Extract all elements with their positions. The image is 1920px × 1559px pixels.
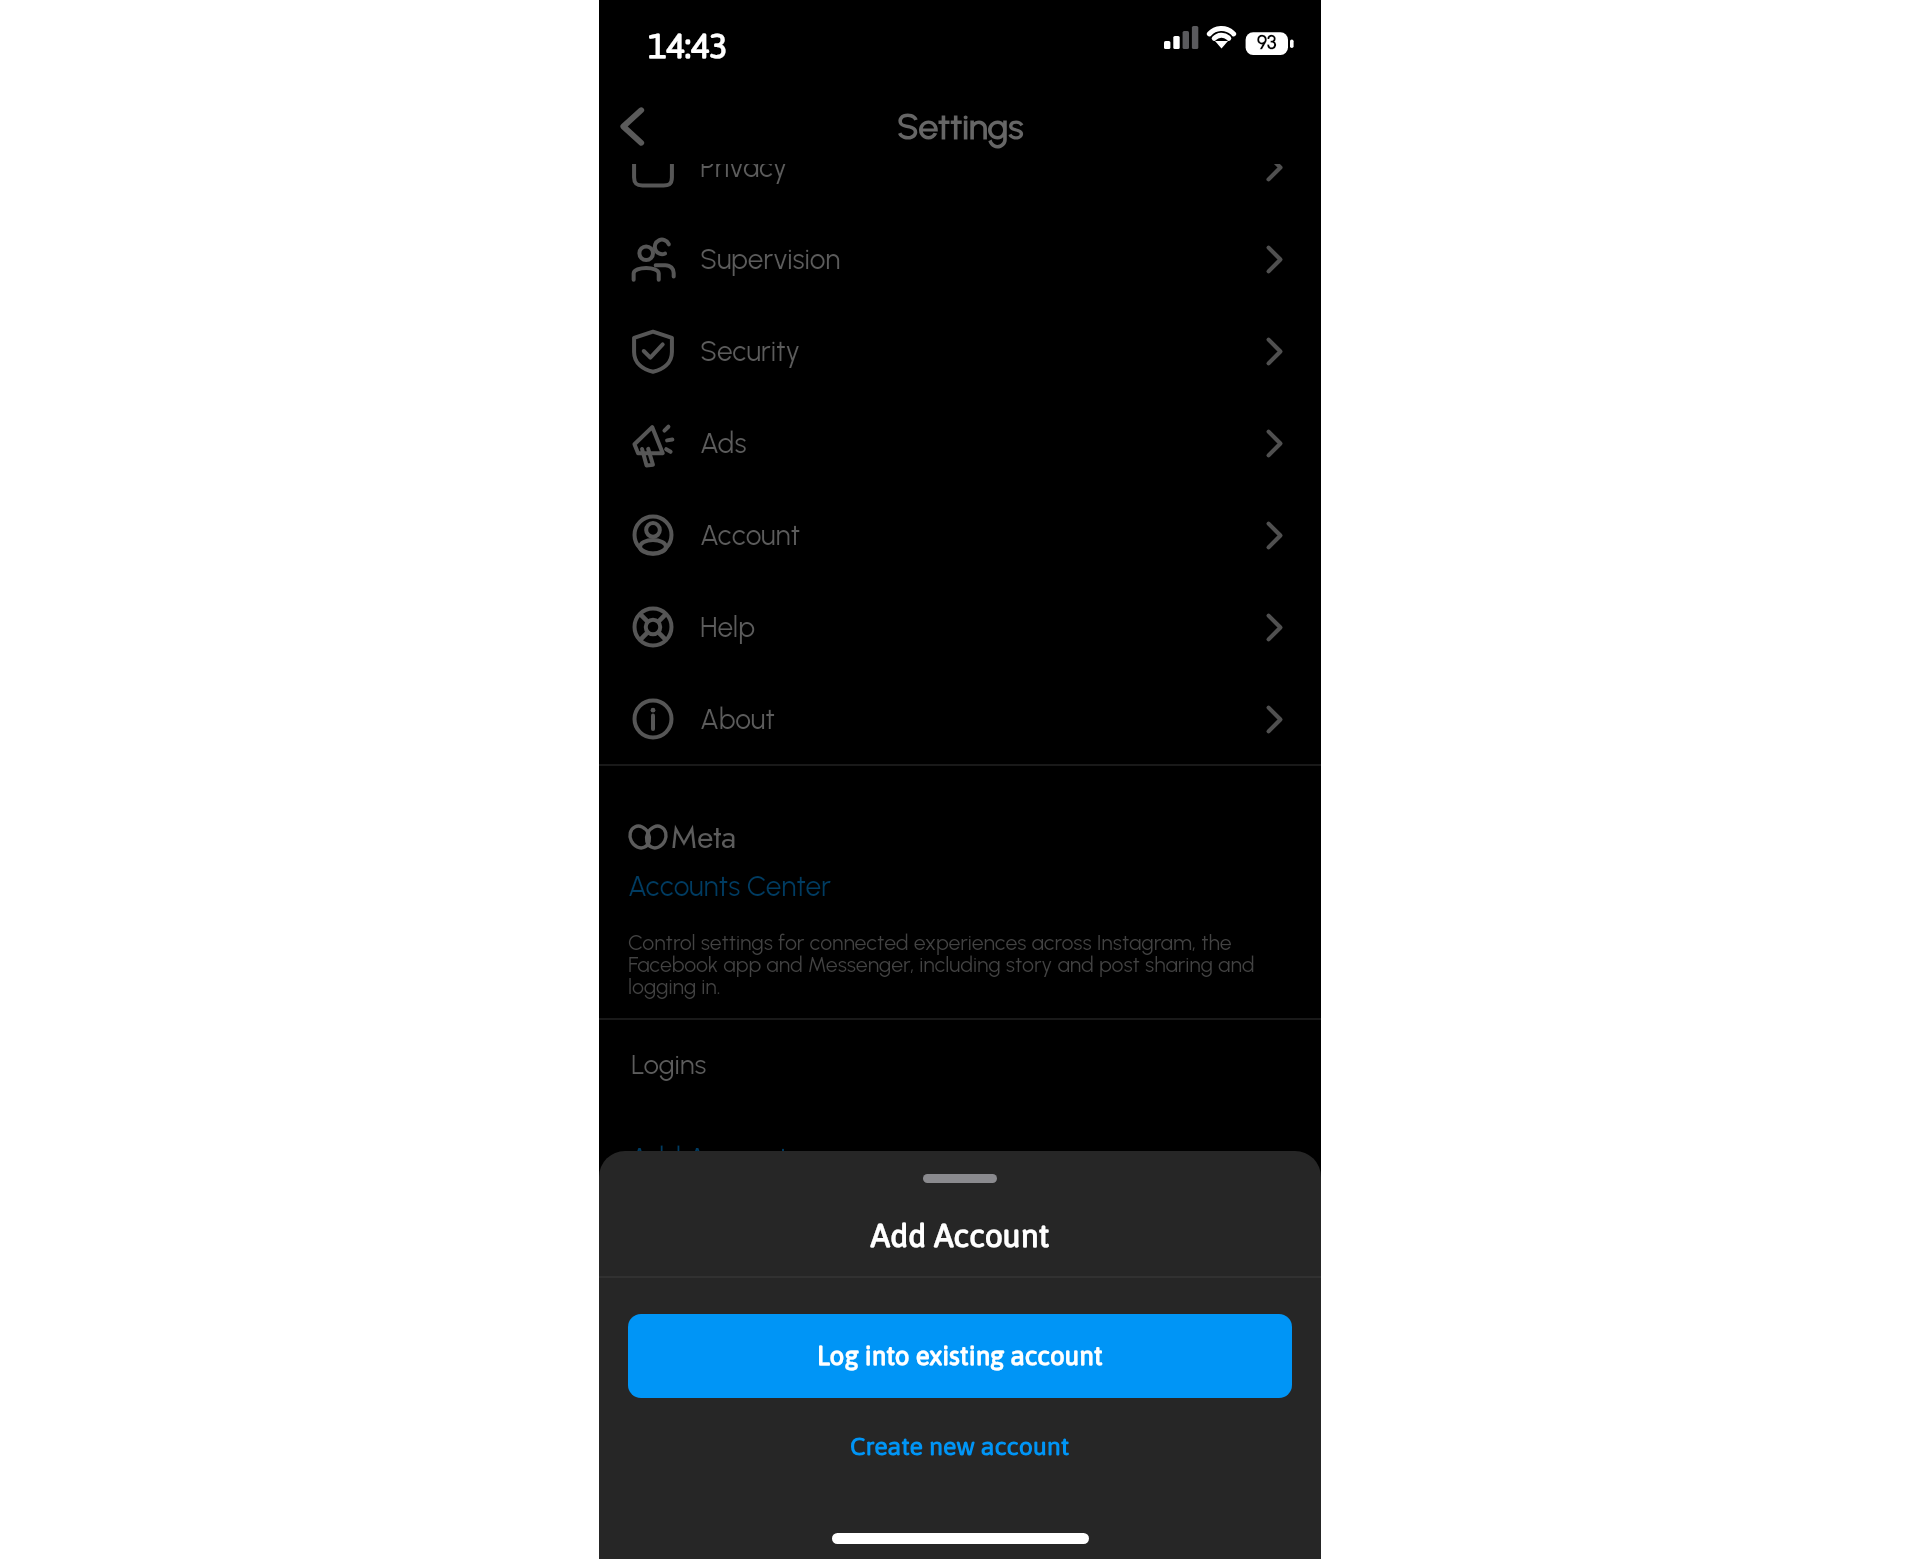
- button[interactable]: Create new account: [599, 1420, 1321, 1472]
- staticText: Add Account: [630, 1141, 789, 1175]
- button[interactable]: Add Account: [626, 1138, 793, 1178]
- staticText: Security: [700, 334, 800, 368]
- button[interactable]: Security: [599, 305, 1321, 397]
- button[interactable]: Accounts Center: [624, 866, 836, 906]
- staticText: Meta: [671, 814, 737, 860]
- staticText: Account: [700, 518, 801, 552]
- button[interactable]: Ads: [599, 397, 1321, 489]
- staticText: Logins: [631, 1048, 707, 1081]
- staticText: Help: [700, 610, 756, 644]
- staticText: Control settings for connected experienc…: [628, 930, 1263, 1000]
- staticText: 93: [1257, 31, 1277, 54]
- staticText: Ads: [700, 426, 747, 460]
- button[interactable]: Help: [599, 581, 1321, 673]
- staticText: Create new account: [850, 1432, 1070, 1461]
- button[interactable]: About: [599, 673, 1321, 765]
- staticText: Supervision: [700, 242, 841, 276]
- button[interactable]: Supervision: [599, 213, 1321, 305]
- staticText: Add Account: [599, 1217, 1321, 1254]
- staticText: Log into existing account: [817, 1341, 1103, 1371]
- staticText: Privacy: [700, 164, 788, 184]
- staticText: About: [700, 702, 775, 736]
- button[interactable]: Account: [599, 489, 1321, 581]
- staticText: Accounts Center: [628, 869, 832, 903]
- staticText: Settings: [897, 105, 1024, 148]
- button[interactable]: Back: [604, 98, 660, 154]
- button[interactable]: Privacy: [599, 164, 1321, 213]
- button[interactable]: Log into existing account: [628, 1314, 1292, 1398]
- staticText: 14:43: [648, 26, 728, 65]
